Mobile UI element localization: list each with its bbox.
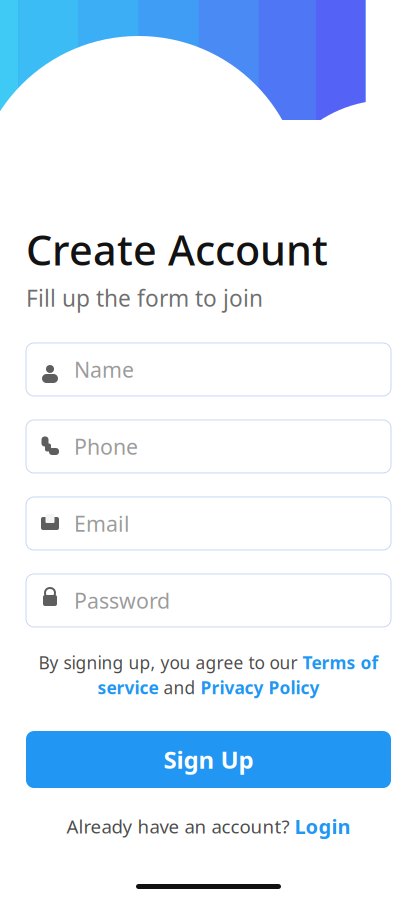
staticText: Name — [74, 355, 134, 384]
staticText: Already have an account? — [66, 814, 294, 839]
button[interactable]: Login — [294, 813, 350, 840]
staticText: Login — [294, 813, 350, 840]
staticText: Sign Up — [163, 744, 253, 775]
staticText: Privacy Policy — [200, 676, 319, 699]
staticText: By signing up, you agree to our — [38, 651, 302, 674]
staticText: and — [158, 676, 200, 699]
button[interactable]: Password — [26, 574, 391, 627]
button[interactable]: Email — [26, 497, 391, 550]
button[interactable]: Privacy Policy — [200, 676, 319, 699]
staticText: Password — [74, 586, 170, 615]
staticText: service — [97, 676, 158, 699]
staticText: Terms of — [302, 651, 378, 674]
button[interactable]: Phone — [26, 420, 391, 473]
staticText: Create Account — [26, 222, 328, 277]
button[interactable]: Name — [26, 343, 391, 396]
button[interactable]: service — [97, 676, 158, 699]
staticText: Phone — [74, 432, 138, 461]
button[interactable]: Terms of — [302, 651, 378, 674]
staticText: Email — [74, 509, 130, 538]
staticText: Fill up the form to join — [26, 283, 263, 313]
button[interactable]: Sign Up — [26, 731, 391, 788]
